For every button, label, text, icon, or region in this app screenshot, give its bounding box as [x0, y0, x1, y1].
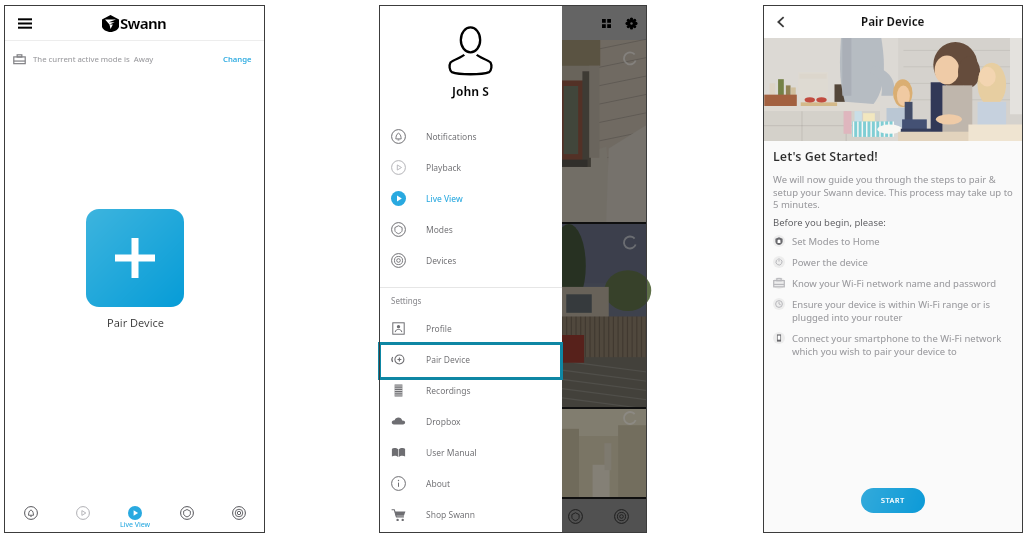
button[interactable]: Grid layout [598, 15, 614, 31]
staticText: Playback [426, 162, 462, 174]
button[interactable]: Recordings [379, 375, 562, 406]
staticText: We will now guide you through the steps … [773, 173, 1013, 211]
button[interactable]: Playback [57, 495, 109, 533]
button[interactable]: Dropbox [379, 406, 562, 437]
staticText: Swann [120, 13, 167, 33]
staticText: Devices [426, 255, 457, 267]
button[interactable]: User Manual [379, 437, 562, 468]
button[interactable]: Change [220, 49, 255, 70]
button[interactable]: START [861, 488, 925, 513]
button[interactable]: Open navigation menu [14, 12, 36, 34]
button[interactable]: Modes [161, 495, 213, 533]
button[interactable]: Devices [213, 495, 265, 533]
staticText: Pair Device [426, 354, 471, 366]
button[interactable]: Modes [379, 214, 562, 245]
staticText: Notifications [426, 131, 477, 143]
button[interactable] [86, 209, 184, 307]
staticText: Before you begin, please: [773, 216, 886, 229]
button[interactable]: Profile [379, 313, 562, 344]
staticText: The current active mode is Away [33, 54, 154, 65]
staticText: Ensure your device is within Wi-Fi range… [792, 298, 1007, 324]
staticText: Let's Get Started! [773, 148, 878, 165]
staticText: Know your Wi-Fi network name and passwor… [792, 277, 997, 290]
staticText: Pair Device [861, 14, 925, 30]
staticText: Power the device [792, 256, 868, 269]
button[interactable]: Settings [623, 15, 639, 31]
button[interactable]: Live View [109, 495, 161, 533]
staticText: John S [452, 83, 489, 99]
staticText: User Manual [426, 447, 477, 459]
staticText: START [881, 496, 905, 506]
staticText: Shop Swann [426, 509, 476, 521]
button[interactable]: Notifications [379, 121, 562, 152]
button[interactable]: Devices [379, 245, 562, 276]
staticText: Profile [426, 323, 452, 335]
staticText: Recordings [426, 385, 471, 397]
staticText: Pair Device [107, 315, 164, 330]
staticText: About [426, 478, 451, 490]
button[interactable]: Notifications [4, 495, 57, 533]
staticText: Set Modes to Home [792, 235, 880, 248]
staticText: Connect your smartphone to the Wi-Fi net… [792, 332, 1007, 358]
staticText: Live View [120, 520, 151, 530]
staticText: Dropbox [426, 416, 461, 428]
button[interactable]: About [379, 468, 562, 499]
staticText: Live View [426, 193, 463, 205]
button[interactable]: Live View [379, 183, 562, 214]
staticText: Change [223, 54, 252, 65]
button[interactable]: Shop Swann [379, 499, 562, 530]
button[interactable]: Playback [379, 152, 562, 183]
staticText: Modes [426, 224, 453, 236]
button[interactable]: Pair Device [379, 344, 562, 375]
staticText: Settings [391, 295, 422, 306]
button[interactable]: Back [771, 12, 791, 32]
